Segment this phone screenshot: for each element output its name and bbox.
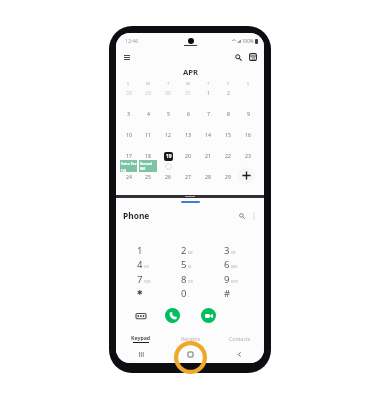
staticText: MNO [231,265,238,269]
button[interactable]: 21 [198,151,218,172]
button[interactable]: Menu [120,50,134,64]
button[interactable]: 31 [178,88,198,109]
button[interactable]: 4 [138,109,158,130]
staticText: 30 [165,89,171,96]
staticText: APR [183,67,198,77]
button[interactable]: 29 [138,88,158,109]
staticText: 23 [245,152,251,159]
staticText: 22 [225,152,231,159]
staticText: S [127,81,130,87]
button[interactable]: Recent apps [116,346,166,363]
staticText: 21 [205,152,211,159]
button[interactable]: 2 [181,243,221,257]
button[interactable]: # [224,286,264,300]
button[interactable]: 7 [198,109,218,130]
button[interactable]: Call [165,308,180,323]
button[interactable]: 10 [119,130,138,151]
button[interactable]: 11 [138,130,158,151]
button[interactable]: 5 [181,257,221,271]
staticText: 4 [137,258,143,271]
button[interactable]: 8 [218,109,238,130]
button[interactable]: 8 [181,272,221,286]
button[interactable]: 30 [238,172,258,193]
staticText: 100% [242,38,254,44]
staticText: 11 [145,131,151,138]
button[interactable]: 6 [224,257,264,271]
button[interactable]: Video call [201,308,216,323]
button[interactable]: More options [248,210,259,221]
staticText: 1 [137,244,143,257]
button[interactable]: 9 [238,109,258,130]
button[interactable]: 22 [218,151,238,172]
button[interactable]: 19 [158,151,178,172]
staticText: ABC [188,251,193,255]
button[interactable]: 30 [158,88,178,109]
staticText: TUV [188,280,193,284]
button[interactable]: Search [231,50,245,64]
button[interactable]: 27 [178,172,198,193]
button[interactable]: 29 [218,172,238,193]
button[interactable]: Search [236,210,247,221]
button[interactable]: ✱ [137,286,177,300]
button[interactable]: 24 [119,172,138,193]
button[interactable]: 5 [158,109,178,130]
button[interactable]: 26 [158,172,178,193]
button[interactable]: Go to today [246,50,260,64]
staticText: 7 [137,273,143,286]
staticText: 19 [251,56,256,61]
button[interactable]: 18 [138,151,158,172]
button[interactable]: 9 [224,272,264,286]
button[interactable]: 25 [138,172,158,193]
button[interactable]: 2 [218,88,238,109]
button[interactable]: 7 [137,272,177,286]
button[interactable]: 15 [218,130,238,151]
staticText: 10 [126,131,132,138]
staticText: 8 [227,110,230,117]
staticText: 12 [165,131,171,138]
button[interactable]: 20 [178,151,198,172]
staticText: WXYZ [231,280,238,284]
button[interactable]: 3 [119,109,138,130]
staticText: 6 [187,110,190,117]
button[interactable]: 1 [137,243,177,257]
staticText: DEF [231,251,236,255]
button[interactable]: 23 [238,151,258,172]
staticText: # [224,287,231,300]
staticText: 7 [207,110,210,117]
staticText: 29 [145,89,151,96]
staticText: ✱ [137,289,143,297]
button[interactable]: 1 [198,88,218,109]
button[interactable]: Home [166,346,215,363]
staticText: 3 [224,244,230,257]
staticText: 24 [126,173,132,180]
button[interactable]: Contacts [215,331,264,346]
staticText: W [186,81,190,87]
button[interactable]: Back [215,346,264,363]
button[interactable]: 4 [137,257,177,271]
button[interactable]: Add event [238,167,255,184]
staticText: 25 [145,173,151,180]
button[interactable]: Recents [166,331,215,346]
button[interactable]: 28 [198,172,218,193]
button[interactable]: Hide keypad [134,309,147,322]
button[interactable]: 6 [178,109,198,130]
button[interactable]: 17 [119,151,138,172]
staticText: 1 [207,89,210,96]
button[interactable]: 14 [198,130,218,151]
staticText: M [146,81,150,87]
button[interactable]: 12 [158,130,178,151]
staticText: 19 [166,153,172,160]
button[interactable]: Keypad [116,331,166,346]
button[interactable]: 28 [119,88,138,109]
button[interactable]: 13 [178,130,198,151]
button[interactable]: 3 [224,243,264,257]
staticText: 18 [145,152,151,159]
button[interactable]: 0 [181,286,221,300]
staticText: 29 [225,173,231,180]
button[interactable]: 16 [238,130,258,151]
staticText: 31 [185,89,191,96]
staticText: 26 [165,173,171,180]
staticText: 2 [227,89,230,96]
staticText: 5 [167,110,170,117]
